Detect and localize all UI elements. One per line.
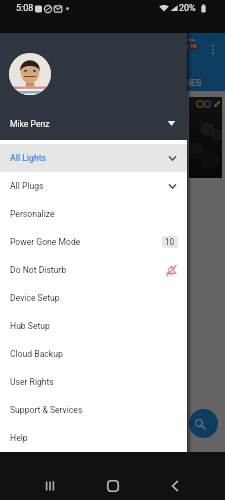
staticText: 20% [179, 3, 196, 14]
button[interactable]: Home [101, 474, 125, 498]
staticText: Hub Setup [10, 321, 187, 331]
staticText: 5:08 [16, 3, 34, 14]
button[interactable]: More options [208, 44, 218, 54]
staticText: User Rights [10, 377, 187, 387]
button[interactable]: Help [0, 424, 187, 452]
staticText: All Plugs [10, 181, 167, 191]
button[interactable]: Recent apps [38, 474, 62, 498]
button[interactable]: All Plugs [0, 172, 187, 200]
staticText: Personalize [10, 209, 187, 219]
button[interactable]: Power Gone Mode [0, 228, 187, 256]
button[interactable]: Switch account [162, 114, 181, 133]
staticText: Help [10, 433, 187, 443]
staticText: All Lights [10, 153, 167, 163]
button[interactable]: User Rights [0, 368, 187, 396]
staticText: Cloud Backup [10, 349, 187, 359]
button[interactable]: Support & Services [0, 396, 187, 424]
button[interactable]: Personalize [0, 200, 187, 228]
staticText: Mike Penz [10, 119, 50, 129]
staticText: SCENES [168, 78, 202, 89]
staticText: Do Not Disturb [10, 265, 165, 275]
button[interactable]: Back [163, 474, 187, 498]
staticText: Device Setup [10, 293, 187, 303]
staticText: Support & Services [10, 405, 187, 415]
staticText: 15 [190, 43, 197, 49]
button[interactable]: Hub Setup [0, 312, 187, 340]
button[interactable] [189, 97, 222, 178]
staticText: 10 [165, 237, 175, 247]
button[interactable]: All Lights [0, 144, 187, 172]
button[interactable]: Profile photo [9, 53, 51, 95]
button[interactable]: Device Setup [0, 284, 187, 312]
button[interactable]: Cloud Backup [0, 340, 187, 368]
button[interactable]: Search [189, 409, 218, 438]
staticText: Power Gone Mode [10, 237, 162, 247]
button[interactable]: Do Not Disturb [0, 256, 187, 284]
